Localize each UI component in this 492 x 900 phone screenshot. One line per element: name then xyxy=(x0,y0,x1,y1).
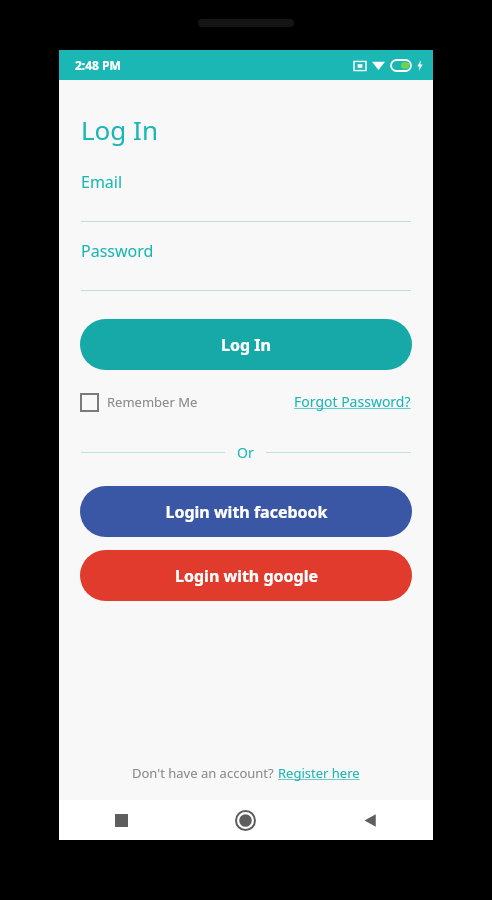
button[interactable]: Back xyxy=(308,800,433,840)
staticText: 2:48 PM xyxy=(75,57,121,73)
staticText: Register here xyxy=(278,764,360,782)
staticText: Log In xyxy=(221,334,271,356)
button[interactable]: Home xyxy=(183,800,308,840)
button[interactable]: Remember Me xyxy=(81,393,198,411)
button[interactable]: Register here xyxy=(278,764,360,782)
staticText: Log In xyxy=(81,112,158,147)
button[interactable]: Recent apps xyxy=(59,800,183,840)
staticText: Login with facebook xyxy=(165,501,328,523)
button[interactable]: Login with google xyxy=(80,550,412,601)
staticText: Or xyxy=(237,443,254,462)
staticText: Email xyxy=(81,171,123,193)
button[interactable]: Log In xyxy=(80,319,412,370)
staticText: Don't have an account? xyxy=(132,764,278,782)
staticText: Login with google xyxy=(175,565,318,587)
staticText: Forgot Password? xyxy=(294,392,411,411)
staticText: Remember Me xyxy=(107,393,198,411)
button[interactable]: Forgot Password? xyxy=(294,392,411,411)
staticText: Password xyxy=(81,240,154,262)
button[interactable]: Email xyxy=(59,171,433,222)
button[interactable]: Login with facebook xyxy=(80,486,412,537)
button[interactable]: Password xyxy=(59,240,433,291)
